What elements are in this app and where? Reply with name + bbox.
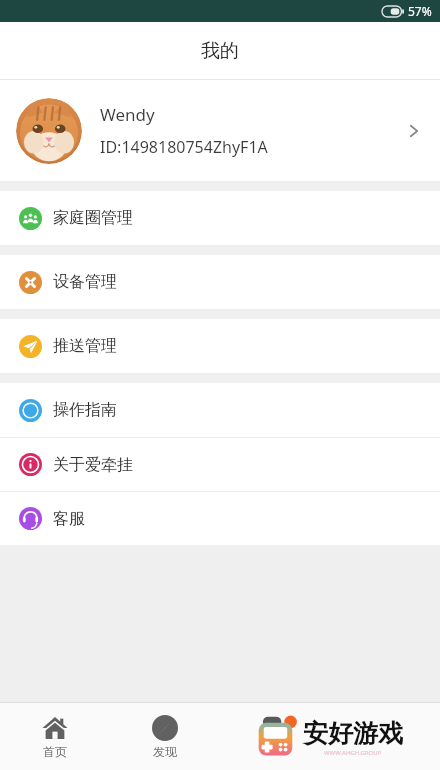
staticText: 客服 <box>53 509 85 529</box>
staticText: 关于爱牵挂 <box>53 455 133 475</box>
staticText: 推送管理 <box>53 336 117 356</box>
staticText: Wendy <box>100 103 155 126</box>
staticText: 操作指南 <box>53 400 117 420</box>
staticText: ID:1498180754ZhyF1A <box>100 136 268 158</box>
button[interactable]: 设备管理 <box>0 255 440 309</box>
button[interactable]: 客服 <box>0 492 440 545</box>
staticText: 首页 <box>43 744 67 759</box>
staticText: 设备管理 <box>53 272 117 292</box>
other: Profile details <box>404 121 424 141</box>
button[interactable]: 推送管理 <box>0 319 440 373</box>
button[interactable]: Home <box>0 703 110 770</box>
button[interactable]: 关于爱牵挂 <box>0 438 440 491</box>
staticText: 我的 <box>201 39 239 63</box>
staticText: 57% <box>408 3 432 19</box>
button[interactable]: Discover <box>110 703 220 770</box>
other: Home <box>42 715 68 741</box>
button[interactable]: 操作指南 <box>0 383 440 437</box>
staticText: 发现 <box>153 744 177 759</box>
staticText: 安好游戏 <box>303 718 403 749</box>
staticText: WWW.AHGH.GROUP <box>324 749 382 757</box>
button[interactable]: 家庭圈管理 <box>0 191 440 245</box>
staticText: 家庭圈管理 <box>53 208 133 228</box>
button[interactable]: Wendy <box>0 80 440 181</box>
other: Discover <box>152 715 178 741</box>
